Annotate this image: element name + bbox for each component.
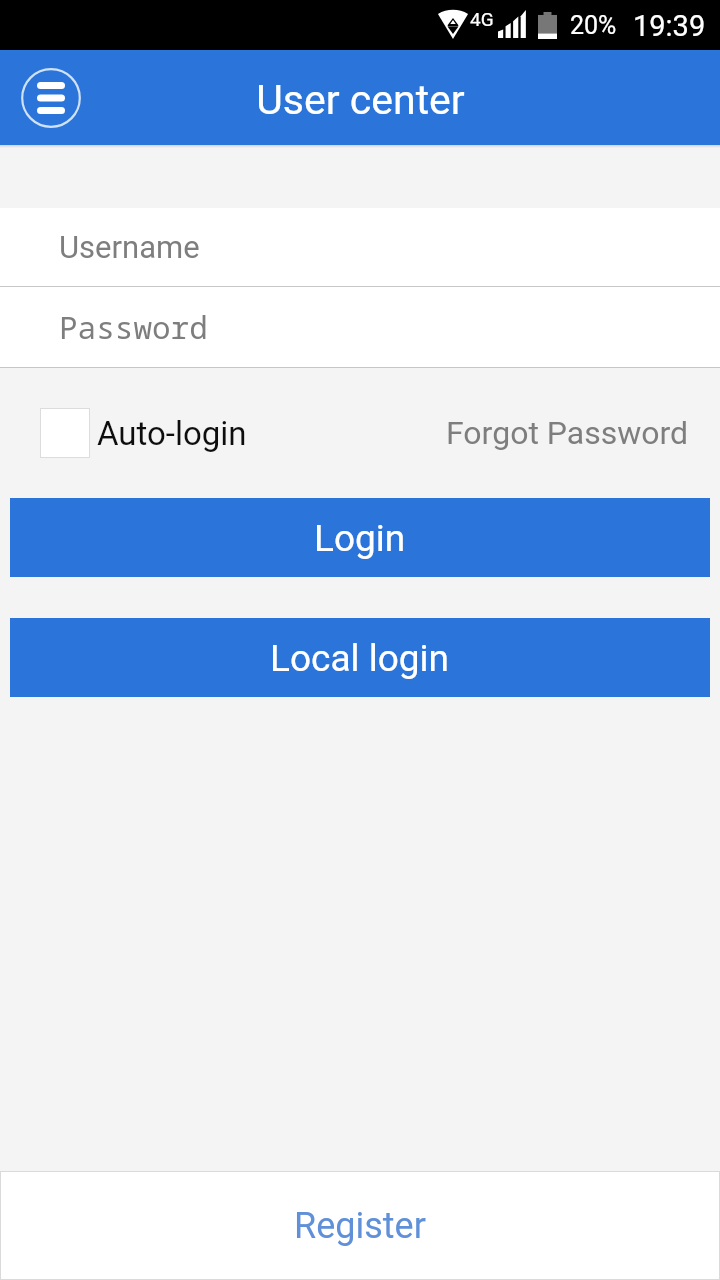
staticText: Username bbox=[59, 229, 200, 265]
staticText: Forgot Password bbox=[446, 414, 689, 452]
button[interactable]: Register bbox=[0, 1171, 720, 1280]
staticText: Local login bbox=[270, 637, 450, 680]
button[interactable]: Local login bbox=[10, 618, 710, 697]
staticText: 4G bbox=[470, 8, 494, 30]
button[interactable]: Username bbox=[0, 208, 720, 286]
staticText: Auto-login bbox=[97, 414, 247, 453]
button[interactable]: Login bbox=[10, 498, 710, 577]
staticText: Password bbox=[59, 306, 208, 348]
staticText: Register bbox=[294, 1205, 426, 1247]
staticText: 19:39 bbox=[633, 9, 706, 43]
button[interactable]: Auto-login bbox=[0, 408, 253, 458]
button[interactable]: Open navigation menu bbox=[21, 68, 81, 128]
button[interactable]: Password bbox=[0, 287, 720, 367]
button[interactable]: Forgot Password bbox=[446, 408, 720, 458]
staticText: Login bbox=[314, 517, 406, 560]
staticText: User center bbox=[256, 76, 465, 124]
staticText: 20% bbox=[570, 11, 617, 40]
